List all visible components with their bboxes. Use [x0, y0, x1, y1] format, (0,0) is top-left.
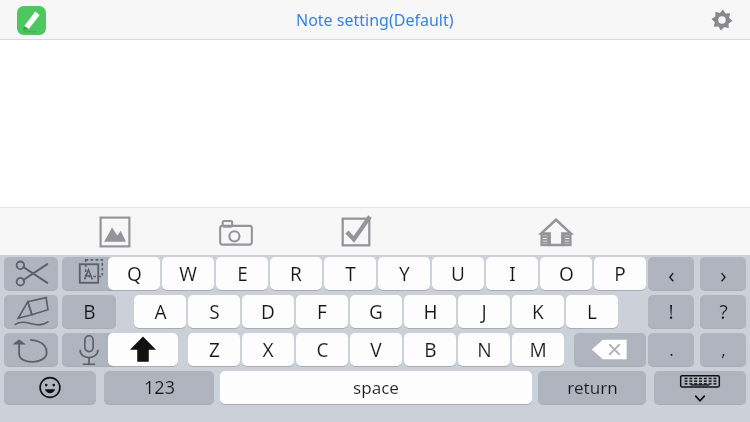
staticText: Z: [209, 337, 220, 363]
button[interactable]: ?: [700, 295, 746, 328]
staticText: !: [668, 299, 674, 325]
staticText: P: [614, 261, 626, 287]
button[interactable]: B: [62, 295, 116, 328]
button[interactable]: E: [216, 257, 268, 290]
staticText: .: [669, 338, 674, 361]
staticText: F: [317, 299, 327, 325]
staticText: Note setting(Default): [296, 9, 454, 31]
staticText: V: [370, 337, 382, 363]
staticText: I: [509, 261, 516, 287]
button[interactable]: New note: [17, 6, 46, 35]
button[interactable]: !: [648, 295, 694, 328]
staticText: Y: [399, 261, 410, 287]
button[interactable]: U: [432, 257, 484, 290]
button[interactable]: A: [134, 295, 186, 328]
button[interactable]: ,: [700, 333, 746, 366]
staticText: A: [154, 299, 167, 325]
button[interactable]: J: [458, 295, 510, 328]
staticText: ,: [721, 338, 726, 361]
staticText: G: [369, 299, 383, 325]
button[interactable]: N: [458, 333, 510, 366]
staticText: B: [83, 299, 96, 325]
button[interactable]: Q: [108, 257, 160, 290]
button[interactable]: Dictate: [62, 333, 116, 366]
staticText: W: [179, 261, 197, 287]
staticText: ›: [720, 259, 727, 289]
button[interactable]: V: [350, 333, 402, 366]
staticText: Q: [127, 261, 142, 287]
button[interactable]: P: [594, 257, 646, 290]
staticText: R: [290, 261, 302, 287]
button[interactable]: Select all: [62, 257, 116, 290]
staticText: C: [316, 337, 329, 363]
staticText: D: [261, 299, 275, 325]
staticText: X: [262, 337, 274, 363]
button[interactable]: Backspace: [574, 333, 646, 366]
button[interactable]: L: [566, 295, 618, 328]
staticText: N: [477, 337, 492, 363]
button[interactable]: Emoji: [4, 371, 96, 404]
staticText: J: [481, 299, 487, 325]
button[interactable]: Z: [188, 333, 240, 366]
staticText: space: [353, 376, 399, 399]
staticText: M: [529, 337, 547, 363]
staticText: S: [209, 299, 220, 325]
staticText: return: [567, 376, 618, 399]
button[interactable]: .: [648, 333, 694, 366]
button[interactable]: ‹: [648, 257, 694, 290]
button[interactable]: K: [512, 295, 564, 328]
staticText: K: [532, 299, 544, 325]
staticText: 123: [144, 375, 175, 400]
button[interactable]: T: [324, 257, 376, 290]
button[interactable]: G: [350, 295, 402, 328]
button[interactable]: Checklist: [334, 214, 378, 250]
button[interactable]: C: [296, 333, 348, 366]
button[interactable]: Camera: [214, 214, 258, 250]
button[interactable]: S: [188, 295, 240, 328]
staticText: T: [345, 261, 356, 287]
button[interactable]: W: [162, 257, 214, 290]
button[interactable]: Y: [378, 257, 430, 290]
button[interactable]: Undo: [4, 333, 58, 366]
staticText: E: [237, 261, 248, 287]
button[interactable]: F: [296, 295, 348, 328]
button[interactable]: D: [242, 295, 294, 328]
button[interactable]: O: [540, 257, 592, 290]
staticText: ‹: [668, 259, 675, 289]
staticText: B: [424, 337, 437, 363]
button[interactable]: Settings: [710, 8, 734, 32]
button[interactable]: R: [270, 257, 322, 290]
button[interactable]: Highlighter: [4, 295, 58, 328]
button[interactable]: 123: [104, 371, 214, 404]
button[interactable]: X: [242, 333, 294, 366]
staticText: ?: [719, 299, 728, 325]
button[interactable]: Export: [534, 214, 578, 250]
staticText: H: [423, 299, 438, 325]
button[interactable]: B: [404, 333, 456, 366]
button[interactable]: I: [486, 257, 538, 290]
staticText: O: [559, 261, 574, 287]
button[interactable]: Shift: [108, 333, 178, 366]
button[interactable]: Cut: [4, 257, 58, 290]
button[interactable]: M: [512, 333, 564, 366]
button[interactable]: return: [538, 371, 646, 404]
staticText: L: [587, 299, 597, 325]
staticText: U: [451, 261, 465, 287]
button[interactable]: space: [220, 371, 532, 404]
button[interactable]: Hide keyboard: [654, 371, 746, 404]
button[interactable]: ›: [700, 257, 746, 290]
button[interactable]: H: [404, 295, 456, 328]
button[interactable]: Insert image: [93, 214, 137, 250]
